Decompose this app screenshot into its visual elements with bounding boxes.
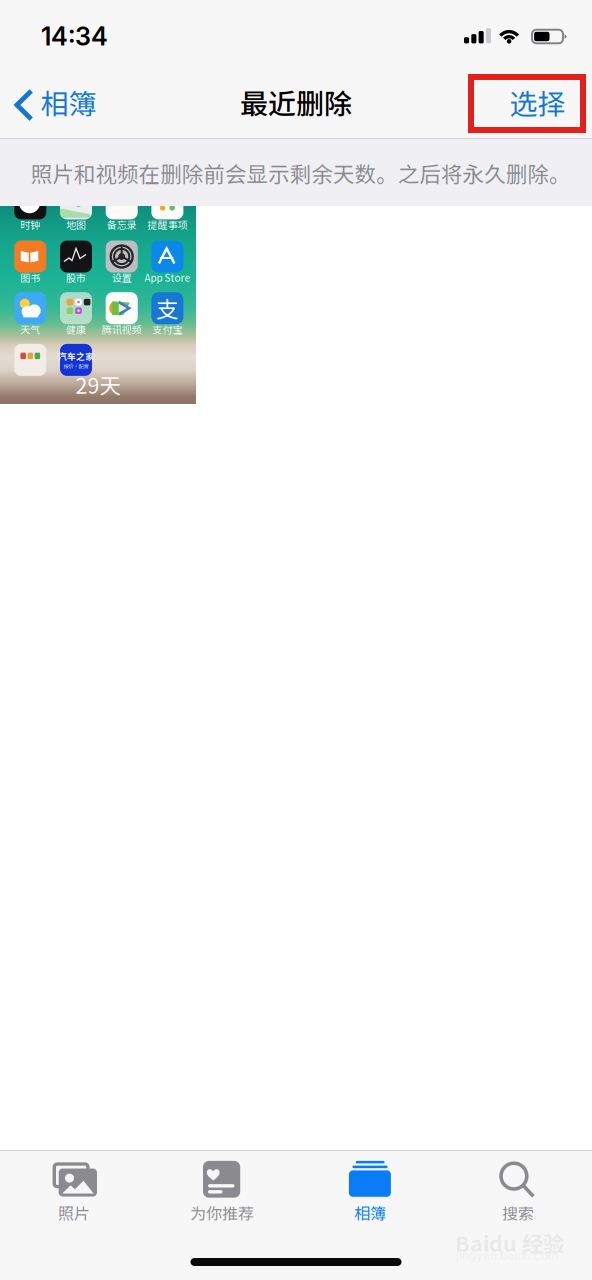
button[interactable]: 选择 — [0, 70, 112, 123]
button[interactable]: 为你推荐 — [148, 1151, 296, 1233]
staticText: 地图 — [66, 217, 86, 232]
staticText: 备忘录 — [107, 217, 137, 232]
staticText: 汽车之家 — [58, 350, 94, 362]
button[interactable]: 相簿 — [0, 70, 112, 139]
staticText: 支付宝 — [152, 322, 182, 336]
staticText: 图书 — [20, 270, 40, 285]
staticText: 时钟 — [20, 217, 40, 232]
staticText: 提醒事项 — [147, 217, 187, 232]
staticText: 照片和视频在删除前会显示剩余天数。之后将永久删除。 — [31, 157, 570, 189]
staticText: 照片 — [58, 1201, 90, 1224]
staticText: 相簿 — [354, 1201, 386, 1224]
staticText: 为你推荐 — [190, 1201, 254, 1224]
staticText: 支 — [156, 292, 179, 325]
staticText: jingyan.baidu.com — [456, 1248, 559, 1262]
button[interactable]: 搜索 — [444, 1151, 592, 1233]
button[interactable]: 照片 — [0, 1151, 148, 1233]
staticText: 选择 — [509, 82, 565, 122]
staticText: 天气 — [20, 322, 40, 336]
staticText: 报价·配置 — [63, 362, 88, 370]
staticText: 最近删除 — [240, 82, 352, 122]
staticText: 相簿 — [40, 82, 96, 122]
button[interactable]: 相簿 — [296, 1151, 444, 1233]
staticText: 设置 — [112, 270, 132, 285]
staticText: 14:34 — [41, 21, 108, 52]
staticText: 股市 — [66, 270, 86, 285]
staticText: Baidu 经验 — [455, 1227, 564, 1258]
staticText: 腾讯视频 — [102, 322, 142, 336]
staticText: App Store — [144, 270, 190, 285]
staticText: 29天 — [75, 369, 120, 400]
staticText: 搜索 — [502, 1201, 534, 1224]
staticText: 健康 — [66, 322, 86, 336]
